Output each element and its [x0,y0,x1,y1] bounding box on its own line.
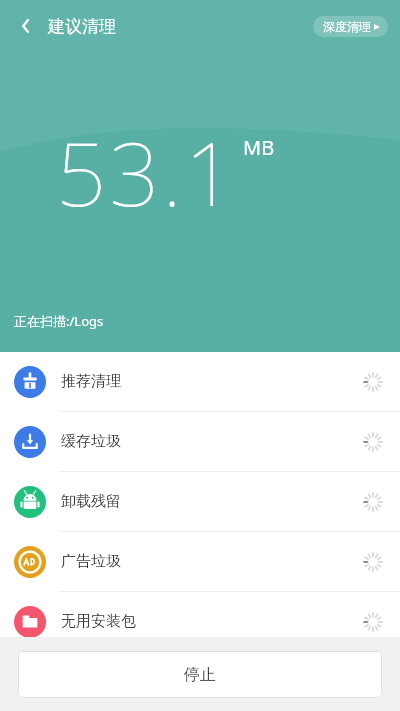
staticText: 停止 [184,665,216,685]
staticText: 深度清理 [323,19,371,34]
staticText: 无用安装包 [61,612,136,631]
button[interactable]: 深度清理 [313,16,388,37]
staticText: MB [243,134,275,161]
staticText: 正在扫描:/Logs [14,312,104,330]
button[interactable]: 缓存垃圾 [0,412,400,471]
button[interactable]: 停止 [18,651,382,698]
staticText: 53.1 [56,112,238,232]
button[interactable]: 广告垃圾 [0,532,400,591]
staticText: 建议清理 [48,16,116,37]
button[interactable]: 卸载残留 [0,472,400,531]
button[interactable]: Back [8,8,44,44]
staticText: 推荐清理 [61,372,121,391]
staticText: 缓存垃圾 [61,432,121,451]
button[interactable]: 无用安装包 [0,592,400,651]
staticText: 卸载残留 [61,492,121,511]
button[interactable]: 推荐清理 [0,352,400,411]
staticText: 广告垃圾 [61,552,121,571]
